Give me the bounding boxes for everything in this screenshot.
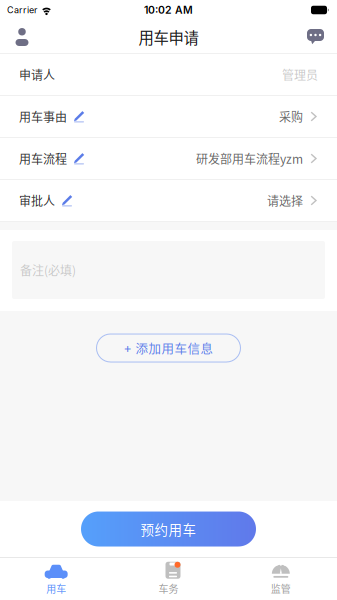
staticText: 10:02 AM: [144, 4, 193, 16]
staticText: 添加用车信息: [135, 339, 213, 357]
button[interactable]: 用车流程: [0, 138, 337, 180]
button[interactable]: 用车事由: [0, 96, 337, 138]
button[interactable]: 预约用车: [81, 511, 256, 546]
staticText: 研发部用车流程yzm: [196, 150, 303, 167]
button[interactable]: Messages: [286, 20, 337, 54]
staticText: Carrier: [7, 5, 37, 15]
staticText: 用车: [46, 581, 66, 596]
staticText: 车务: [158, 581, 178, 596]
staticText: 审批人: [19, 192, 55, 209]
button[interactable]: Profile: [0, 20, 51, 54]
button[interactable]: +: [96, 334, 240, 362]
button[interactable]: 车务: [112, 557, 225, 599]
button[interactable]: 审批人: [0, 180, 337, 222]
staticText: 监管: [271, 581, 291, 596]
staticText: 预约用车: [140, 519, 196, 539]
staticText: 管理员: [282, 66, 318, 83]
staticText: 用车事由: [19, 108, 67, 125]
staticText: 用车流程: [19, 150, 67, 167]
staticText: 请选择: [267, 192, 303, 209]
staticText: 用车申请: [138, 26, 198, 48]
button[interactable]: 申请人: [0, 54, 337, 96]
staticText: 采购: [279, 108, 303, 125]
button[interactable]: 用车: [0, 557, 112, 599]
button[interactable]: 监管: [225, 557, 337, 599]
staticText: 备注(必填): [20, 261, 76, 279]
button[interactable]: 备注(必填): [0, 230, 337, 311]
staticText: 申请人: [19, 66, 55, 83]
staticText: +: [123, 340, 131, 355]
